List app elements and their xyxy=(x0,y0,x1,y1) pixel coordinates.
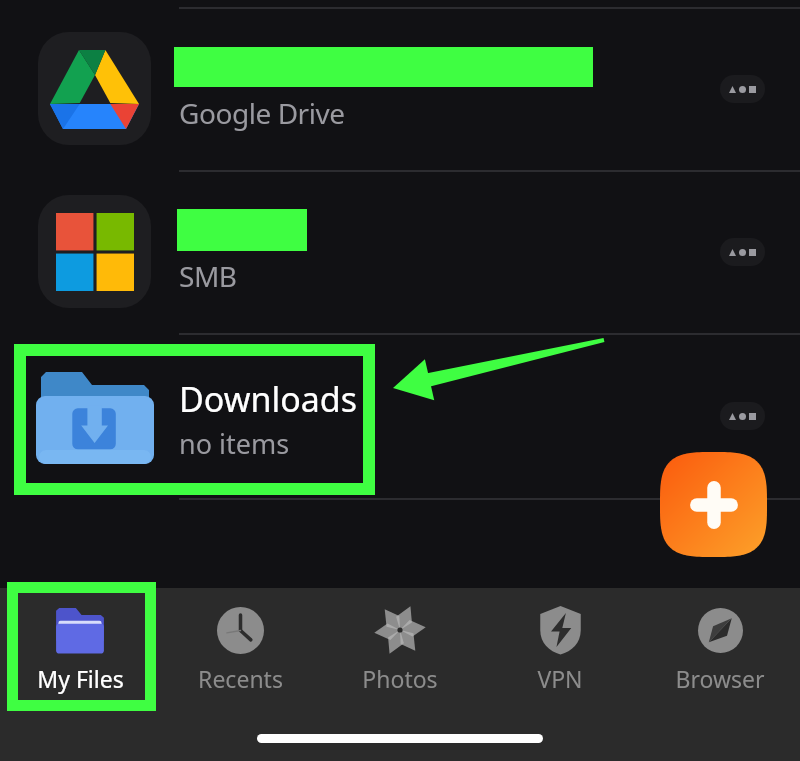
staticText: Browser xyxy=(675,663,765,694)
staticText: Photos xyxy=(362,663,438,694)
button[interactable]: VPN xyxy=(480,588,640,708)
staticText: VPN xyxy=(537,663,583,694)
staticText: SMB xyxy=(179,257,237,295)
staticText: Google Drive xyxy=(179,94,345,132)
button[interactable]: My Files xyxy=(0,588,160,708)
button[interactable]: Downloads xyxy=(0,333,800,498)
staticText: Recents xyxy=(198,663,283,694)
button[interactable]: Browser xyxy=(640,588,800,708)
button[interactable]: Photos xyxy=(320,588,480,708)
button[interactable]: More options xyxy=(720,238,765,266)
staticText: Downloads xyxy=(179,376,358,422)
button[interactable]: More options xyxy=(720,75,765,103)
button[interactable]: Recents xyxy=(160,588,320,708)
button[interactable]: More options xyxy=(720,402,765,430)
button[interactable]: Add xyxy=(660,452,767,557)
staticText: My Files xyxy=(37,663,124,694)
button[interactable]: Google Drive xyxy=(0,7,800,170)
button[interactable]: SMB xyxy=(0,170,800,333)
staticText: no items xyxy=(179,425,290,462)
